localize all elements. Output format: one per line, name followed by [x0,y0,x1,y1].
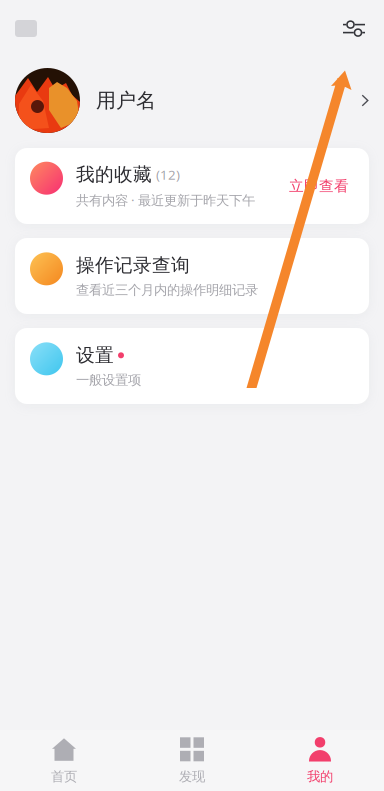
staticText: 我的收藏 [76,163,152,186]
staticText: 首页 [51,768,77,785]
staticText: 操作记录查询 [76,254,190,277]
staticText: 我的 [307,768,333,785]
staticText: 查看近三个月内的操作明细记录 [76,282,258,298]
button[interactable]: 发现 [128,730,256,791]
staticText: 用户名 [96,88,156,113]
button[interactable]: 我的 [256,730,384,791]
staticText: 立即查看 [289,177,349,195]
staticText: (12) [156,166,180,183]
button[interactable]: 用户名 [0,57,384,144]
button[interactable]: 设置 [15,328,369,404]
staticText: 一般设置项 [76,372,141,388]
button[interactable]: 首页 [0,730,128,791]
button[interactable]: 我的收藏 [15,148,369,224]
button[interactable]: Settings [339,13,369,43]
staticText: 共有内容 · 最近更新于昨天下午 [76,191,255,209]
button[interactable]: 操作记录查询 [15,238,369,314]
staticText: 发现 [179,768,205,785]
staticText: 设置 [76,344,114,367]
